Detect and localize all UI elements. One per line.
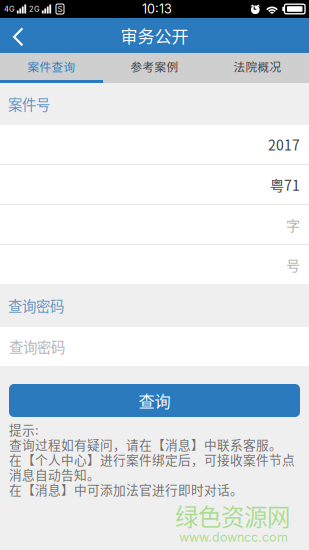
staticText: 消息自动告知。: [9, 465, 100, 483]
staticText: 4G: [4, 4, 15, 13]
button[interactable]: Back: [0, 18, 37, 53]
staticText: 查询: [138, 389, 170, 412]
staticText: 参考案例: [130, 58, 178, 75]
staticText: 法院概况: [233, 58, 281, 75]
staticText: 查询过程如有疑问，请在【消息】中联系客服。: [9, 435, 282, 453]
staticText: 在【消息】中可添加法官进行即时对话。: [9, 480, 243, 498]
staticText: 在【个人中心】进行案件绑定后，可接收案件节点: [9, 450, 295, 468]
staticText: 审务公开: [120, 23, 188, 48]
staticText: 绿色资源网: [175, 498, 290, 532]
staticText: 粤71: [270, 174, 300, 195]
staticText: 2017: [268, 134, 300, 155]
staticText: 2G: [29, 4, 40, 13]
staticText: 号: [286, 254, 300, 275]
staticText: 字: [286, 214, 300, 235]
staticText: 提示:: [9, 420, 39, 438]
staticText: 10:13: [142, 1, 172, 17]
staticText: 案件查询: [27, 58, 75, 75]
staticText: www.downcc.com: [179, 529, 288, 545]
button[interactable]: 案件查询: [0, 53, 103, 80]
button[interactable]: 法院概况: [206, 53, 309, 80]
button[interactable]: 查询: [9, 384, 300, 417]
staticText: 查询密码: [9, 336, 65, 357]
button[interactable]: 参考案例: [103, 53, 206, 80]
staticText: 案件号: [8, 94, 50, 114]
staticText: S: [57, 4, 62, 14]
staticText: 查询密码: [8, 295, 64, 316]
